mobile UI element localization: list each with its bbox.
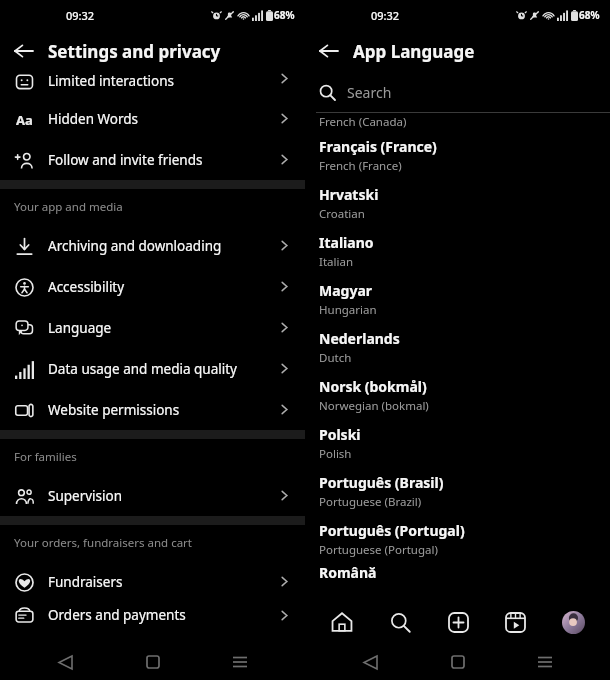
staticText: App Language	[353, 40, 475, 63]
button[interactable]: Back	[348, 644, 392, 680]
button[interactable]: Limited interactions	[0, 72, 305, 98]
staticText: Polski	[319, 425, 361, 444]
button[interactable]: Create	[437, 601, 479, 643]
button[interactable]: Search	[379, 601, 421, 643]
staticText: Portuguese (Portugal)	[319, 542, 438, 558]
button[interactable]: Recents	[523, 644, 567, 680]
button[interactable]: Back	[0, 30, 48, 72]
button[interactable]: Archiving and downloading	[0, 225, 305, 266]
staticText: Norsk (bokmål)	[319, 377, 427, 396]
staticText: Accessibility	[48, 278, 125, 296]
staticText: French (France)	[319, 158, 402, 174]
staticText: Português (Portugal)	[319, 521, 465, 540]
staticText: Nederlands	[319, 329, 400, 348]
button[interactable]: Recents	[218, 644, 262, 680]
staticText: For families	[14, 449, 77, 465]
button[interactable]: Fundraisers	[0, 561, 305, 602]
staticText: 68%	[274, 8, 295, 22]
button[interactable]: Back	[305, 30, 353, 72]
staticText: Dutch	[319, 350, 352, 366]
button[interactable]: Data usage and media quality	[0, 348, 305, 389]
staticText: Follow and invite friends	[48, 151, 203, 169]
staticText: Aa	[16, 111, 33, 129]
staticText: Croatian	[319, 206, 365, 222]
button[interactable]: Română	[305, 563, 610, 583]
staticText: Portuguese (Brazil)	[319, 494, 422, 510]
button[interactable]: Norsk (bokmål)	[305, 371, 610, 419]
staticText: Hungarian	[319, 302, 377, 318]
staticText: Language	[48, 319, 112, 337]
staticText: Fundraisers	[48, 573, 123, 591]
staticText: Data usage and media quality	[48, 360, 237, 378]
staticText: Norwegian (bokmal)	[319, 398, 429, 414]
staticText: Your orders, fundraisers and cart	[14, 535, 193, 551]
button[interactable]: Italiano	[305, 227, 610, 275]
staticText: Italian	[319, 254, 353, 270]
staticText: Supervision	[48, 487, 123, 505]
staticText: Français (France)	[319, 137, 437, 156]
button[interactable]: Accessibility	[0, 266, 305, 307]
staticText: Português (Brasil)	[319, 473, 444, 492]
button[interactable]: Português (Brasil)	[305, 467, 610, 515]
button[interactable]: Home	[436, 644, 480, 680]
button[interactable]: Follow and invite friends	[0, 139, 305, 180]
staticText: Archiving and downloading	[48, 237, 222, 255]
button[interactable]: Nederlands	[305, 323, 610, 371]
staticText: Search	[347, 83, 392, 102]
button[interactable]: Magyar	[305, 275, 610, 323]
staticText: Limited interactions	[48, 72, 174, 90]
staticText: Italiano	[319, 233, 374, 252]
button[interactable]: Português (Portugal)	[305, 515, 610, 563]
staticText: 09:32	[66, 8, 95, 23]
button[interactable]: Profile	[552, 601, 594, 643]
staticText: Your app and media	[14, 199, 123, 215]
staticText: Română	[319, 563, 377, 582]
button[interactable]: French (Canada)	[305, 113, 610, 131]
button[interactable]: Home	[321, 601, 363, 643]
button[interactable]: Home	[131, 644, 175, 680]
button[interactable]: Search	[305, 72, 610, 112]
button[interactable]: Supervision	[0, 475, 305, 516]
staticText: Magyar	[319, 281, 373, 300]
staticText: Polish	[319, 446, 352, 462]
staticText: Hidden Words	[48, 110, 139, 128]
button[interactable]: Hrvatski	[305, 179, 610, 227]
staticText: 09:32	[371, 8, 400, 23]
staticText: Settings and privacy	[48, 40, 221, 63]
button[interactable]: Orders and payments	[0, 602, 305, 628]
staticText: Orders and payments	[48, 606, 186, 624]
button[interactable]: Français (France)	[305, 131, 610, 179]
button[interactable]: Website permissions	[0, 389, 305, 430]
staticText: Website permissions	[48, 401, 180, 419]
button[interactable]: Reels	[494, 601, 536, 643]
staticText: Hrvatski	[319, 185, 379, 204]
staticText: 68%	[579, 8, 600, 22]
button[interactable]: Polski	[305, 419, 610, 467]
staticText: French (Canada)	[319, 114, 407, 130]
button[interactable]: Back	[43, 644, 87, 680]
button[interactable]: Aa	[0, 98, 305, 139]
button[interactable]: Language	[0, 307, 305, 348]
